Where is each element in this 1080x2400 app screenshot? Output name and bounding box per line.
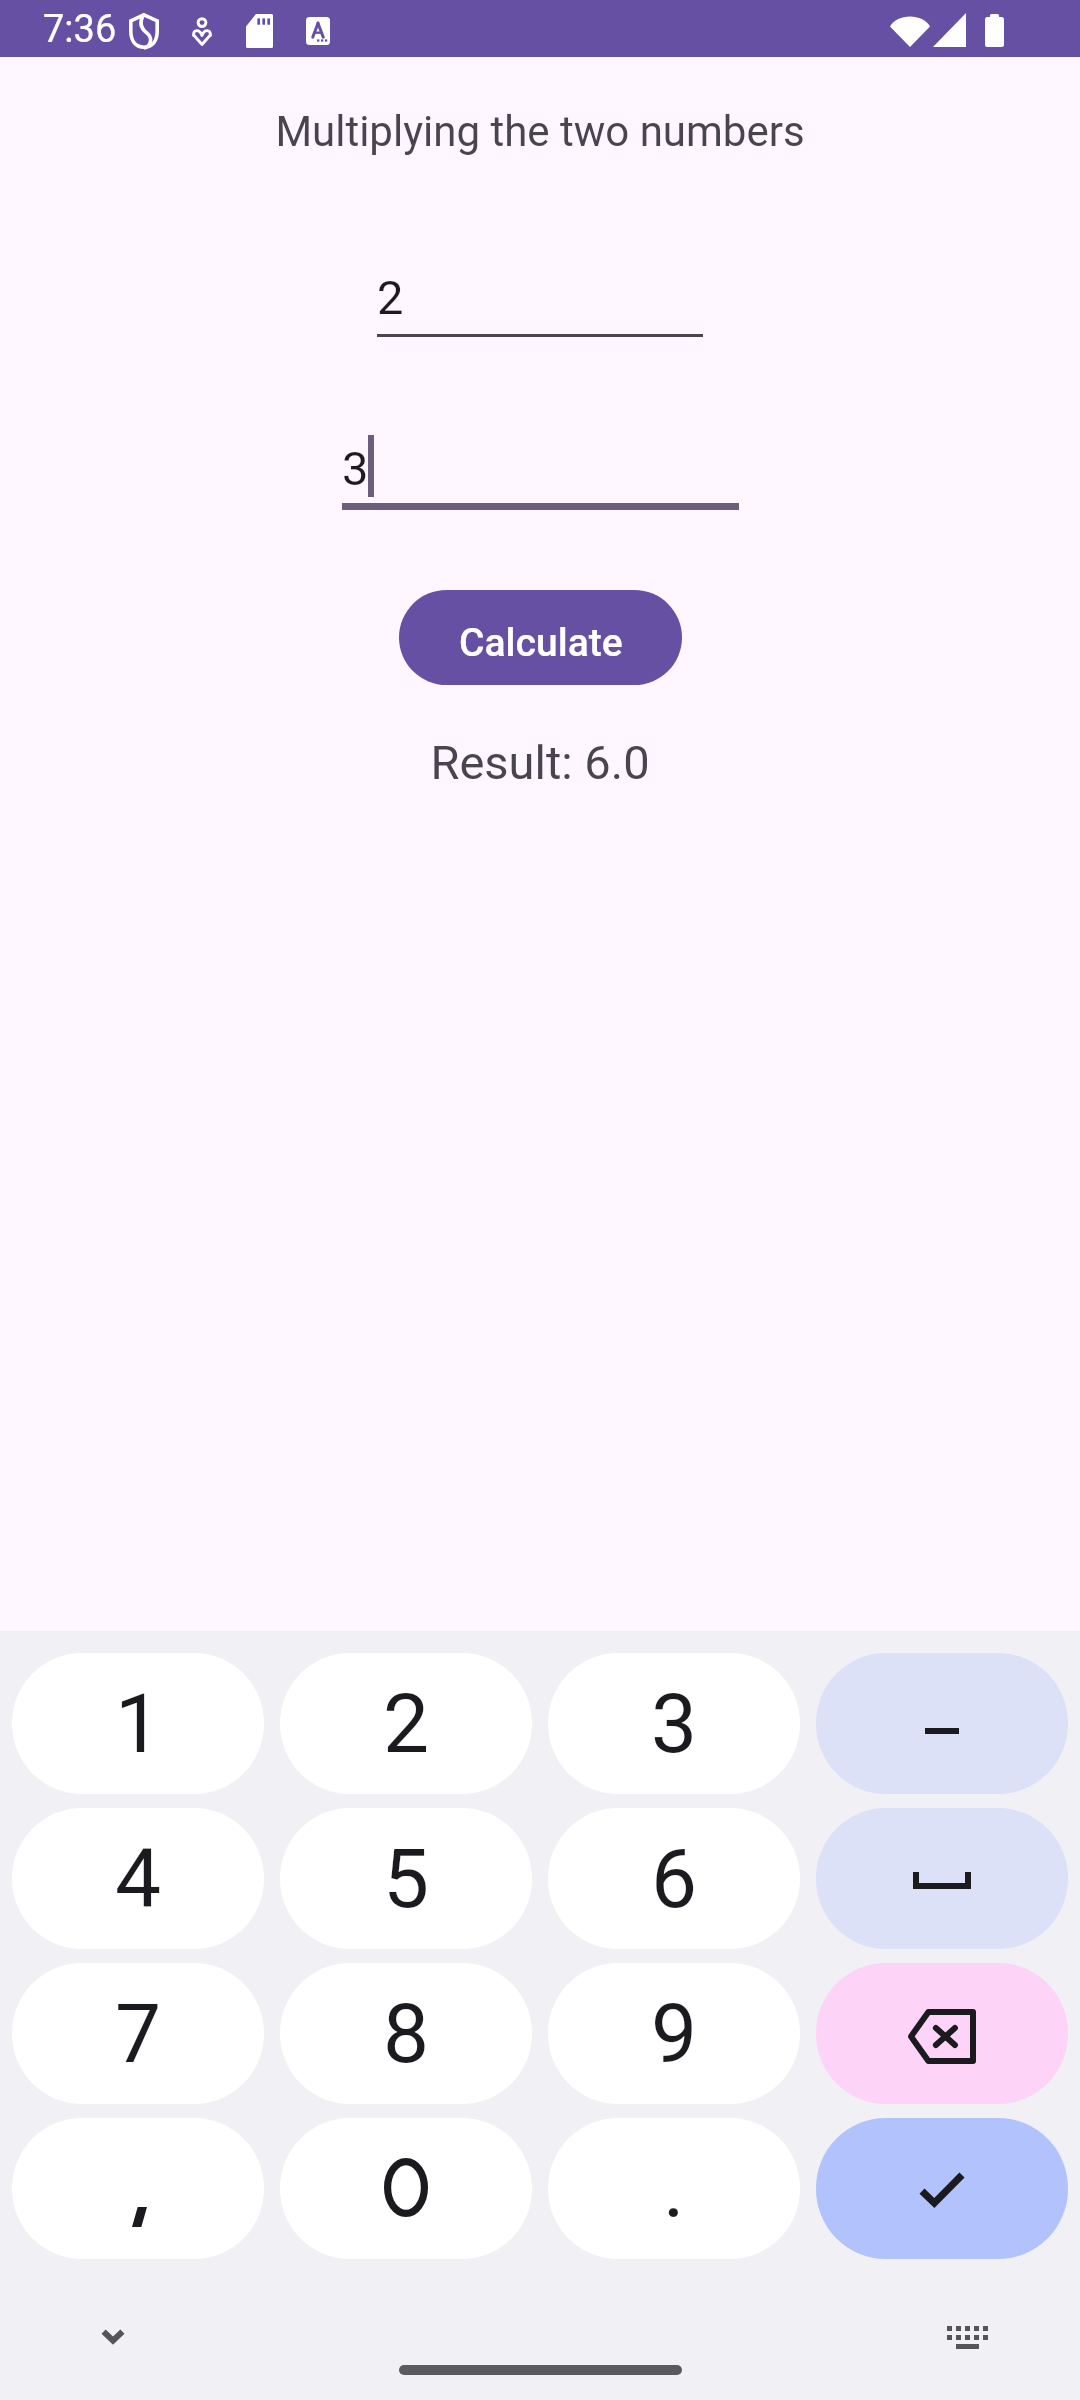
button[interactable]: 4 [12, 1808, 264, 1949]
button[interactable]: 9 [548, 1963, 800, 2104]
button[interactable]: Enter [816, 2118, 1068, 2259]
button[interactable]: Calculate [399, 590, 682, 685]
staticText: Multiplying the two numbers [0, 107, 1080, 156]
button[interactable]: Minus [816, 1653, 1068, 1794]
staticText: Result: 6.0 [0, 735, 1080, 790]
button[interactable]: . [548, 2118, 800, 2259]
staticText: 7:36 [43, 7, 117, 52]
button[interactable]: 3 [548, 1653, 800, 1794]
staticText: 2 [377, 270, 404, 325]
staticText: 3 [651, 1676, 698, 1772]
button[interactable]: 1 [12, 1653, 264, 1794]
staticText: Calculate [459, 620, 623, 666]
button[interactable]: Delete [816, 1963, 1068, 2104]
staticText: 3 [342, 441, 369, 496]
staticText: 6 [651, 1831, 698, 1927]
staticText: 5 [383, 1831, 430, 1927]
button[interactable]: Space [816, 1808, 1068, 1949]
button[interactable]: Hide keyboard [78, 2302, 148, 2372]
staticText: 8 [383, 1986, 430, 2082]
button[interactable] [280, 2118, 532, 2259]
button[interactable]: Switch keyboard [932, 2302, 1002, 2372]
button[interactable]: 7 [12, 1963, 264, 2104]
button[interactable]: 2 [280, 1653, 532, 1794]
staticText: 1 [115, 1676, 162, 1772]
button[interactable]: 5 [280, 1808, 532, 1949]
button[interactable]: 8 [280, 1963, 532, 2104]
staticText: . [663, 2141, 685, 2237]
staticText: 4 [115, 1831, 162, 1927]
staticText: 9 [651, 1986, 698, 2082]
staticText: 2 [383, 1676, 430, 1772]
button[interactable] [12, 2118, 264, 2259]
staticText: 7 [115, 1986, 162, 2082]
button[interactable]: 6 [548, 1808, 800, 1949]
